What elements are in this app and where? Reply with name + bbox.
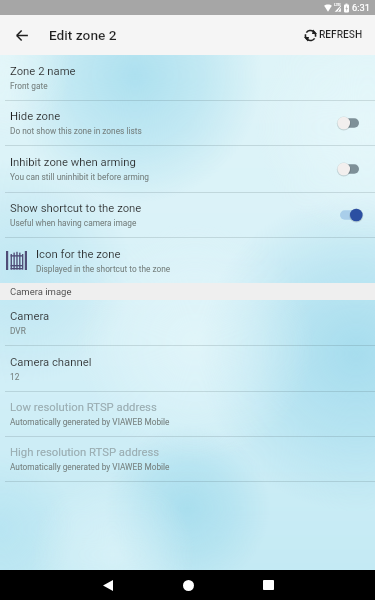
button[interactable]: Inhibit zone when arming [0, 146, 375, 192]
button[interactable]: Show shortcut to the zone [0, 193, 375, 237]
staticText: Low resolution RTSP address [10, 401, 157, 414]
staticText: DVR [10, 326, 26, 336]
staticText: Show shortcut to the zone [10, 202, 142, 215]
staticText: Automatically generated by VIAWEB Mobile [10, 462, 170, 472]
button[interactable]: Camera [0, 300, 375, 345]
staticText: Displayed in the shortcut to the zone [36, 264, 171, 274]
button[interactable]: Back [0, 15, 44, 55]
staticText: You can still uninhibit it before arming [10, 172, 149, 182]
staticText: 12 [10, 372, 20, 382]
button[interactable]: Recents [253, 570, 283, 600]
button[interactable]: REFRESH [292, 15, 375, 55]
staticText: Icon for the zone [36, 248, 121, 261]
staticText: REFRESH [319, 29, 363, 41]
button[interactable]: Home [173, 570, 203, 600]
staticText: Front gate [10, 81, 48, 91]
staticText: Edit zone 2 [49, 27, 117, 43]
staticText: Hide zone [10, 110, 61, 123]
staticText: Automatically generated by VIAWEB Mobile [10, 417, 170, 427]
staticText: Camera image [10, 286, 72, 297]
staticText: Camera [10, 310, 50, 323]
button[interactable]: Zone 2 name [0, 55, 375, 100]
button[interactable]: Camera channel [0, 346, 375, 391]
staticText: 6:31 [352, 2, 370, 13]
staticText: LTE [334, 2, 341, 7]
staticText: Do not show this zone in zones lists [10, 126, 142, 136]
button[interactable]: Hide zone [0, 101, 375, 145]
staticText: Camera channel [10, 356, 92, 369]
staticText: Zone 2 name [10, 65, 76, 78]
staticText: High resolution RTSP address [10, 446, 160, 459]
button[interactable]: Icon for the zone [0, 238, 375, 283]
staticText: Inhibit zone when arming [10, 156, 136, 169]
staticText: Useful when having camera image [10, 218, 137, 228]
button[interactable]: High resolution RTSP address [0, 437, 375, 481]
button[interactable]: Low resolution RTSP address [0, 392, 375, 436]
button[interactable]: Back [93, 570, 123, 600]
